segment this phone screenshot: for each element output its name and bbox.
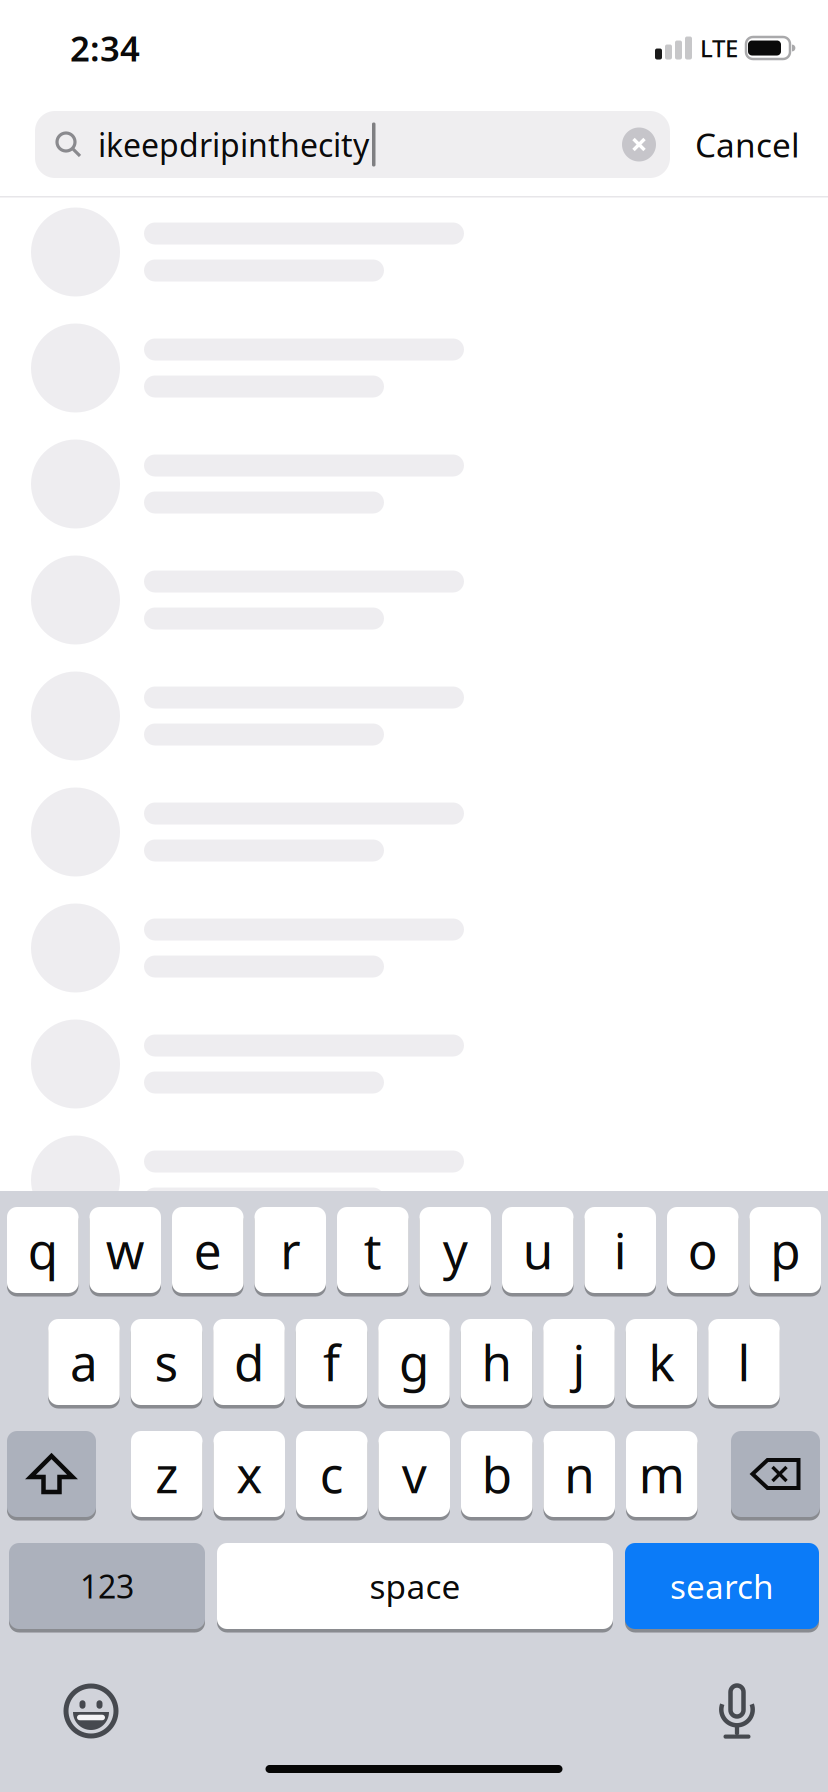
staticText: b — [482, 1441, 512, 1507]
staticText: v — [402, 1441, 427, 1507]
staticText: LTE — [700, 32, 738, 64]
staticText: y — [443, 1217, 468, 1283]
staticText: e — [194, 1217, 222, 1283]
staticText: ikeepdripinthecity — [98, 123, 369, 166]
button[interactable]: Shift — [7, 1431, 96, 1519]
staticText: t — [364, 1217, 382, 1283]
button[interactable]: s — [131, 1319, 202, 1407]
staticText: q — [28, 1217, 58, 1283]
staticText: Cancel — [695, 122, 800, 167]
button[interactable]: Search field — [35, 111, 670, 178]
button[interactable]: space — [217, 1543, 613, 1631]
staticText: 2:34 — [70, 25, 140, 71]
button[interactable]: o — [667, 1207, 738, 1295]
button[interactable]: x — [213, 1431, 285, 1519]
button[interactable]: 123 — [9, 1543, 205, 1631]
button[interactable]: l — [708, 1319, 780, 1407]
button[interactable]: Delete — [731, 1431, 820, 1519]
staticText: p — [770, 1217, 800, 1283]
button[interactable]: q — [7, 1207, 78, 1295]
staticText: k — [648, 1329, 674, 1395]
button[interactable]: p — [749, 1207, 821, 1295]
button[interactable]: i — [584, 1207, 656, 1295]
button[interactable]: f — [296, 1319, 367, 1407]
staticText: s — [154, 1329, 178, 1395]
staticText: d — [234, 1329, 264, 1395]
button[interactable]: m — [626, 1431, 697, 1519]
staticText: u — [523, 1217, 553, 1283]
button[interactable]: z — [131, 1431, 202, 1519]
button[interactable]: v — [378, 1431, 450, 1519]
button[interactable]: w — [89, 1207, 161, 1295]
staticText: h — [481, 1329, 511, 1395]
staticText: l — [737, 1329, 750, 1395]
staticText: r — [280, 1217, 300, 1283]
button[interactable]: search — [625, 1543, 819, 1631]
staticText: search — [670, 1564, 774, 1608]
staticText: a — [70, 1329, 98, 1395]
button[interactable]: r — [254, 1207, 326, 1295]
button[interactable]: Clear text — [622, 127, 656, 161]
button[interactable]: g — [378, 1319, 450, 1407]
staticText: z — [155, 1441, 178, 1507]
button[interactable]: a — [48, 1319, 120, 1407]
button[interactable]: u — [502, 1207, 573, 1295]
button[interactable]: Emoji — [0, 1683, 119, 1739]
staticText: c — [320, 1441, 344, 1507]
staticText: f — [323, 1329, 340, 1395]
button[interactable]: b — [461, 1431, 532, 1519]
button[interactable]: Dictate — [714, 1681, 828, 1741]
staticText: g — [399, 1329, 429, 1395]
staticText: n — [564, 1441, 594, 1507]
button[interactable]: n — [543, 1431, 615, 1519]
button[interactable]: t — [337, 1207, 408, 1295]
button[interactable]: e — [172, 1207, 243, 1295]
staticText: o — [688, 1217, 718, 1283]
button[interactable]: d — [213, 1319, 285, 1407]
staticText: i — [614, 1217, 627, 1283]
button[interactable]: y — [419, 1207, 491, 1295]
button[interactable]: k — [626, 1319, 697, 1407]
staticText: w — [106, 1217, 145, 1283]
staticText: m — [639, 1441, 685, 1507]
button[interactable]: c — [296, 1431, 367, 1519]
staticText: space — [369, 1564, 460, 1608]
button[interactable]: j — [543, 1319, 615, 1407]
button[interactable]: Cancel — [695, 122, 800, 167]
staticText: 123 — [80, 1565, 134, 1607]
staticText: x — [236, 1441, 262, 1507]
button[interactable]: h — [461, 1319, 532, 1407]
staticText: j — [572, 1329, 585, 1395]
